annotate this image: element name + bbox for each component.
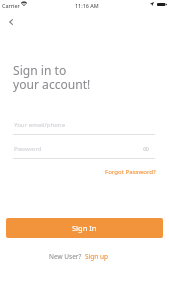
staticText: 11:16 AM (75, 2, 99, 9)
staticText: Sign in to your account! (13, 62, 91, 92)
staticText: Carrier (2, 2, 20, 9)
button[interactable]: Back (3, 14, 19, 30)
button[interactable]: Forgot Password? (101, 163, 160, 179)
button[interactable]: Your email/phone (13, 118, 155, 134)
staticText: Sign In (72, 223, 97, 233)
staticText: Sign up (85, 252, 108, 261)
button[interactable]: Sign In (6, 218, 163, 238)
button[interactable]: Sign up (84, 249, 109, 264)
staticText: New User? (49, 252, 82, 261)
button[interactable]: Show password (140, 143, 152, 155)
staticText: Forgot Password? (105, 167, 156, 175)
staticText: Password (14, 144, 42, 152)
staticText: Your email/phone (14, 120, 66, 128)
button[interactable]: Password (13, 142, 155, 158)
